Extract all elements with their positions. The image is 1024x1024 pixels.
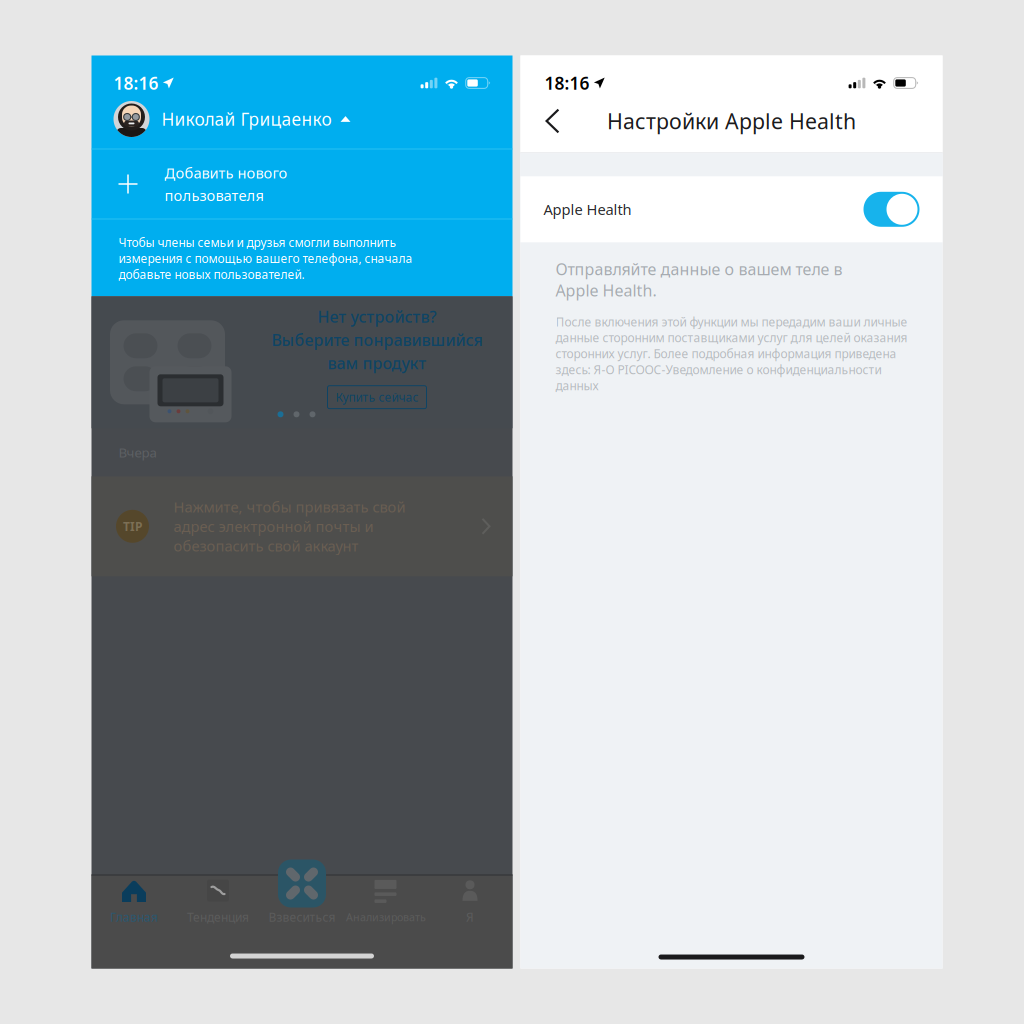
staticText: Нет устройств? bbox=[317, 306, 436, 327]
staticText: Чтобы члены семьи и друзья смогли выполн… bbox=[118, 234, 396, 250]
button[interactable]: Тенденция bbox=[176, 875, 260, 927]
staticText: Купить сейчас bbox=[335, 389, 418, 405]
staticText: данные сторонним поставщиками услуг для … bbox=[555, 330, 907, 346]
staticText: Нажмите, чтобы привязать свой bbox=[173, 497, 405, 517]
staticText: Apple Health. bbox=[555, 279, 656, 301]
button[interactable]: Николай Грицаенко bbox=[91, 89, 512, 148]
staticText: данных bbox=[555, 377, 598, 393]
staticText: измерения с помощью вашего телефона, сна… bbox=[118, 250, 412, 266]
button[interactable]: Назад bbox=[528, 97, 576, 145]
staticText: Добавить нового bbox=[164, 163, 287, 182]
button[interactable]: Главная bbox=[92, 875, 176, 927]
staticText: 18:16 bbox=[544, 71, 589, 94]
button[interactable]: Я bbox=[428, 875, 512, 927]
staticText: здесь: Я-О PICOOC-Уведомление о конфиден… bbox=[555, 362, 881, 377]
staticText: Отправляйте данные о вашем теле в bbox=[555, 258, 842, 279]
button[interactable]: Добавить нового bbox=[91, 149, 512, 218]
staticText: После включения этой функции мы передади… bbox=[555, 314, 907, 330]
staticText: Apple Health bbox=[543, 200, 631, 219]
staticText: Взвеситься bbox=[268, 909, 335, 925]
staticText: Анализировать bbox=[346, 910, 426, 924]
staticText: 18:16 bbox=[113, 71, 158, 94]
button[interactable]: TIP bbox=[91, 476, 512, 576]
staticText: Николай Грицаенко bbox=[161, 107, 331, 130]
staticText: Выберите понравившийся bbox=[271, 329, 482, 350]
staticText: сторонних услуг. Более подробная информа… bbox=[555, 346, 896, 362]
staticText: Вчера bbox=[118, 443, 156, 461]
staticText: Главная bbox=[110, 909, 158, 925]
staticText: добавьте новых пользователей. bbox=[118, 266, 304, 282]
staticText: TIP bbox=[123, 518, 142, 534]
staticText: вам продукт bbox=[327, 352, 426, 374]
staticText: обезопасить свой аккаунт bbox=[173, 536, 358, 555]
button[interactable]: Анализировать bbox=[344, 875, 428, 927]
staticText: Настройки Apple Health bbox=[607, 107, 856, 135]
staticText: адрес электронной почты и bbox=[173, 517, 373, 536]
button[interactable]: Apple Health bbox=[863, 192, 919, 227]
staticText: пользователя bbox=[164, 185, 263, 205]
staticText: Тенденция bbox=[187, 909, 249, 925]
button[interactable]: Взвеситься bbox=[260, 875, 344, 927]
staticText: Я bbox=[466, 909, 474, 925]
button[interactable]: Купить сейчас bbox=[327, 386, 426, 409]
